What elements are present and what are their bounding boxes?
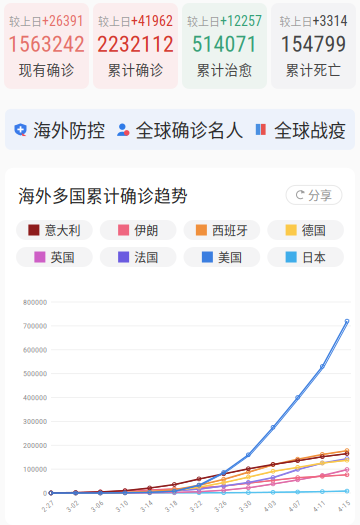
button[interactable]: 伊朗 [100,220,177,240]
staticText: 意大利 [44,221,80,239]
staticText: 日本 [302,248,326,266]
staticText: 较上日 [9,13,42,29]
staticText: 较上日 [187,13,220,29]
staticText: 3-06 [90,502,104,510]
staticText: 现有确诊 [18,59,74,79]
button[interactable]: 海外防控 [14,116,105,142]
staticText: 300000 [23,417,47,426]
button[interactable]: 法国 [100,247,177,267]
staticText: +41962 [131,13,173,29]
staticText: 3-26 [214,502,228,510]
button[interactable]: 较上日 [271,3,356,89]
staticText: 4-07 [288,502,302,510]
staticText: 3-30 [238,502,252,510]
staticText: 700000 [23,321,47,331]
staticText: +26391 [42,13,84,29]
staticText: 海外防控 [33,116,105,142]
staticText: 800000 [23,297,47,307]
staticText: 分享 [308,186,332,204]
staticText: 伊朗 [134,221,158,239]
staticText: 200000 [23,441,47,450]
button[interactable]: 英国 [16,247,93,267]
staticText: 500000 [23,369,47,378]
button[interactable]: 较上日 [4,3,89,89]
staticText: 600000 [23,345,47,354]
staticText: 德国 [302,221,326,239]
staticText: 4-03 [263,502,277,510]
button[interactable]: 较上日 [93,3,178,89]
staticText: 西班牙 [212,221,248,239]
staticText: 4-11 [312,502,326,510]
staticText: 3-14 [140,502,154,510]
staticText: 全球确诊名人 [135,116,243,142]
button[interactable]: 西班牙 [183,220,260,240]
button[interactable]: 德国 [267,220,344,240]
button[interactable]: 美国 [183,247,260,267]
staticText: 累计治愈 [196,59,252,79]
button[interactable]: 较上日 [182,3,267,89]
staticText: 较上日 [279,13,312,29]
button[interactable]: 意大利 [16,220,93,240]
staticText: 法国 [134,248,158,266]
staticText: 累计确诊 [107,59,163,79]
staticText: 1563242 [8,31,85,57]
staticText: 3-22 [189,502,203,510]
button[interactable]: 全球确诊名人 [116,116,243,142]
staticText: 较上日 [98,13,131,29]
staticText: 3-02 [66,502,80,510]
staticText: +12257 [220,13,262,29]
staticText: 英国 [50,248,74,266]
staticText: 海外多国累计确诊趋势 [18,183,188,207]
staticText: +3314 [312,13,347,29]
staticText: 2232112 [97,31,174,57]
staticText: 514071 [191,31,257,57]
button[interactable]: 分享 [286,185,342,204]
staticText: 全球战疫 [274,116,346,142]
staticText: 3-18 [164,502,178,510]
staticText: 4-15 [337,502,351,510]
staticText: 400000 [23,393,47,402]
staticText: 0 [43,488,47,498]
staticText: 100000 [23,464,47,474]
staticText: 累计死亡 [285,59,341,79]
staticText: 2-27 [41,502,55,510]
staticText: 3-10 [115,502,129,510]
staticText: 美国 [218,248,242,266]
button[interactable]: 日本 [267,247,344,267]
staticText: 154799 [280,31,346,57]
button[interactable]: 全球战疫 [255,116,346,142]
